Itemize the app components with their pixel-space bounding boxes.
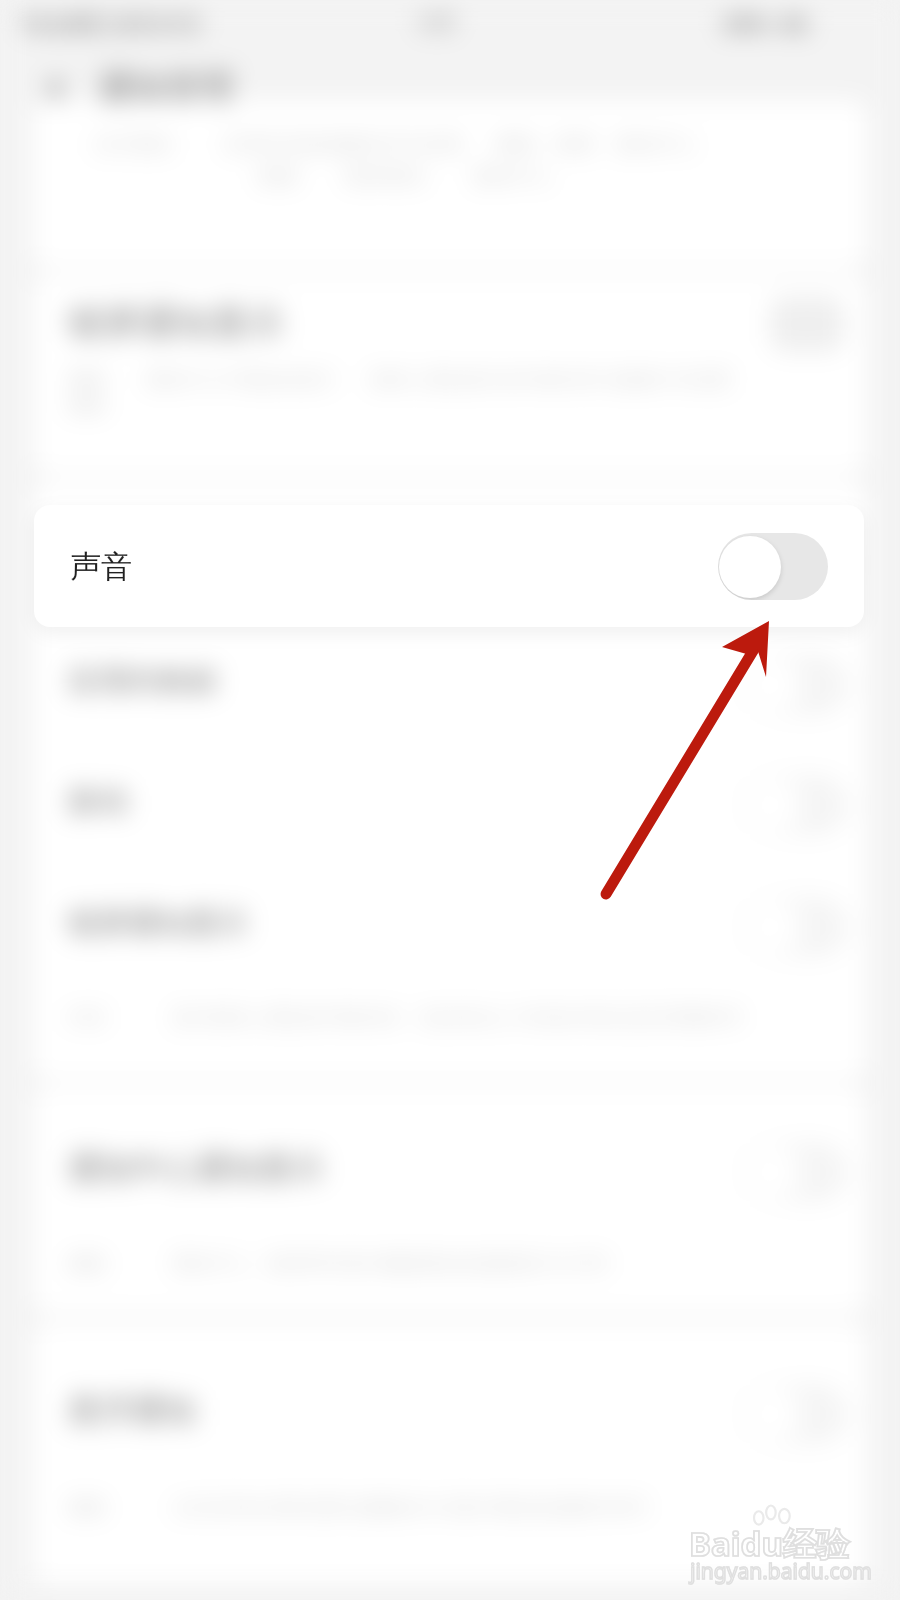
button[interactable]: Sound toggle, off bbox=[718, 533, 828, 600]
staticText: 通知中心通知显示 bbox=[68, 1148, 324, 1188]
button[interactable] bbox=[32, 1086, 868, 1314]
staticText: 声音 bbox=[70, 547, 132, 586]
staticText: Baidu经验 bbox=[689, 1521, 849, 1566]
staticText: 10:24周三8月21日 bbox=[20, 8, 203, 38]
staticText: 声音 bbox=[68, 542, 130, 581]
button[interactable] bbox=[32, 744, 868, 864]
staticText: 悬浮通知 bbox=[68, 1390, 196, 1430]
button[interactable]: Sound toggle bbox=[744, 535, 848, 595]
staticText: 应用内角标 bbox=[68, 662, 218, 700]
button[interactable] bbox=[32, 624, 868, 744]
button[interactable]: Back bbox=[30, 62, 86, 118]
button[interactable] bbox=[32, 864, 868, 1040]
staticText: 通知管理 bbox=[98, 66, 234, 109]
button[interactable]: App badge toggle bbox=[744, 655, 848, 715]
staticText: 锁屏通知显示 bbox=[68, 300, 284, 345]
staticText: 锁屏通知显示 bbox=[68, 904, 248, 942]
staticText: jingyan.baidu.com bbox=[690, 1557, 872, 1586]
staticText: 振动 bbox=[68, 782, 128, 820]
button[interactable]: 声音 bbox=[34, 505, 864, 627]
staticText: 65% 4G bbox=[724, 8, 808, 38]
button[interactable] bbox=[32, 1322, 868, 1584]
